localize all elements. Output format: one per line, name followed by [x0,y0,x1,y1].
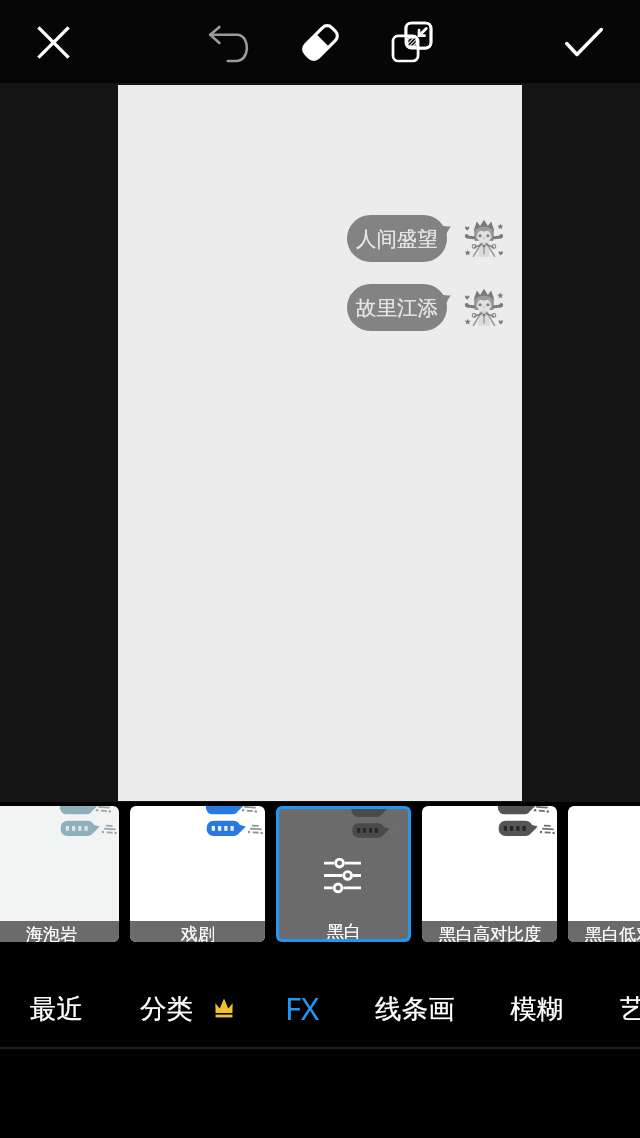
staticText: 黑白 [327,921,361,939]
staticText: 最近 [30,992,83,1025]
staticText: 海泡岩 [26,924,77,942]
button[interactable]: 黑白高对比度 [422,806,557,942]
button[interactable]: 分类 [126,972,247,1044]
button[interactable]: 艺术 [606,972,640,1044]
button[interactable]: Apply [554,12,614,72]
button[interactable]: Close [23,12,83,72]
button[interactable]: Undo [199,12,259,72]
staticText: 黑白高对比度 [439,924,541,942]
button[interactable]: Eraser [290,12,350,72]
staticText: 分类 [140,992,193,1025]
staticText: FX [285,987,320,1029]
staticText: 黑白低对比度 [585,924,640,942]
staticText: 人间盛望 [356,226,438,252]
button[interactable]: 黑白 [279,809,408,939]
button[interactable]: FX [271,972,334,1044]
staticText: 故里江添 [356,295,438,321]
staticText: 戏剧 [181,924,215,942]
button[interactable]: 戏剧 [130,806,265,942]
button[interactable]: 线条画 [361,972,469,1044]
button[interactable]: Merge layers [382,12,442,72]
staticText: 模糊 [510,992,563,1025]
button[interactable]: 模糊 [496,972,577,1044]
button[interactable]: 黑白低对比度 [568,806,640,942]
staticText: 线条画 [375,992,455,1025]
button[interactable]: 最近 [16,972,97,1044]
staticText: 艺术 [620,992,640,1025]
button[interactable]: 海泡岩 [0,806,119,942]
